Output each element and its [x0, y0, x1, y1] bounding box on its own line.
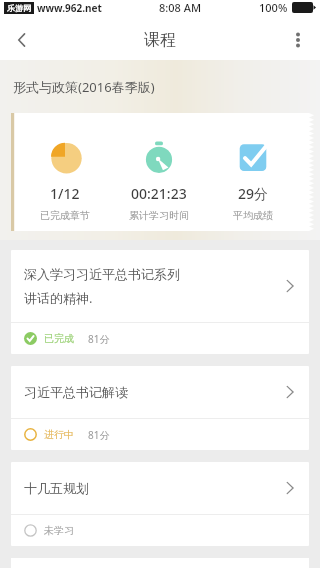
button[interactable]: More options [276, 20, 320, 60]
staticText: www.962.net [37, 1, 102, 15]
button[interactable]: Back [0, 20, 44, 60]
staticText: 课程 [144, 30, 176, 50]
button[interactable]: 00:21:23 [112, 123, 206, 222]
staticText: 进行中 [44, 428, 74, 441]
staticText: 已完成 [44, 332, 74, 345]
staticText: 累计学习时间 [129, 209, 189, 222]
staticText: 100% [259, 0, 288, 15]
staticText: 深入学习习近平总书记系列 [24, 266, 180, 282]
staticText: 乐游网 [7, 3, 31, 13]
staticText: 81分 [88, 428, 110, 442]
button[interactable]: 1/12 [17, 123, 112, 222]
staticText: 1/12 [50, 184, 80, 203]
staticText: 00:21:23 [131, 184, 187, 203]
staticText: 81分 [88, 332, 110, 346]
staticText: 已完成章节 [40, 209, 90, 222]
button[interactable]: 深入学习习近平总书记系列 [11, 250, 309, 354]
staticText: 十几五规划 [24, 480, 89, 496]
button[interactable]: 十几五规划 [11, 462, 309, 546]
staticText: 形式与政策(2016春季版) [13, 78, 155, 96]
staticText: 讲话的精神. [24, 289, 93, 307]
button[interactable]: 29分 [206, 123, 300, 222]
staticText: 8:08 AM [159, 0, 202, 15]
staticText: 未学习 [44, 524, 74, 537]
staticText: 29分 [238, 184, 269, 203]
staticText: 平均成绩 [233, 209, 273, 222]
button[interactable]: 习近平总书记解读 [11, 366, 309, 450]
staticText: 习近平总书记解读 [24, 384, 128, 400]
